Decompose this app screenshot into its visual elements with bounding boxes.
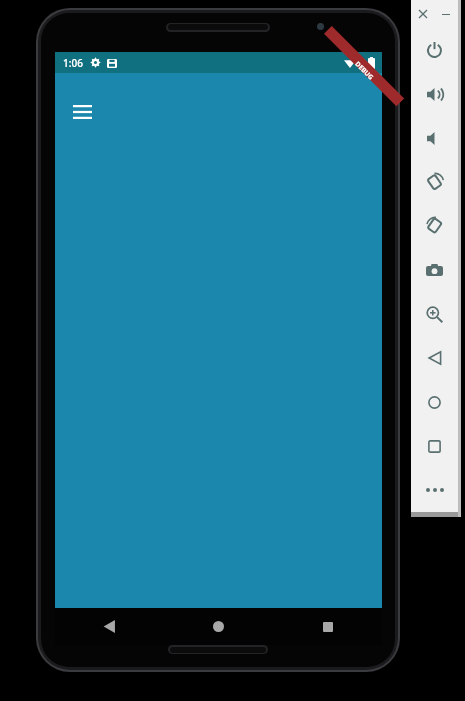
button[interactable]: Open navigation menu bbox=[63, 93, 101, 131]
staticText: 1:06 bbox=[63, 56, 83, 70]
button[interactable]: Close emulator bbox=[411, 0, 434, 28]
button[interactable]: Home bbox=[411, 380, 458, 424]
button[interactable]: Rotate left bbox=[411, 160, 458, 204]
button[interactable]: Rotate right bbox=[411, 204, 458, 248]
button[interactable]: Power bbox=[411, 28, 458, 72]
button[interactable]: Zoom bbox=[411, 292, 458, 336]
button[interactable]: Back bbox=[55, 608, 164, 645]
button[interactable]: Home bbox=[164, 608, 273, 645]
button[interactable]: Take screenshot bbox=[411, 248, 458, 292]
button[interactable]: More options bbox=[411, 468, 458, 512]
button[interactable]: Back bbox=[411, 336, 458, 380]
button[interactable]: Recent apps bbox=[273, 608, 382, 645]
button[interactable]: Minimize emulator bbox=[434, 0, 458, 28]
staticText: DEBUG bbox=[353, 59, 376, 82]
button[interactable]: Volume up bbox=[411, 72, 458, 116]
button[interactable]: Overview bbox=[411, 424, 458, 468]
button[interactable]: Volume down bbox=[411, 116, 458, 160]
